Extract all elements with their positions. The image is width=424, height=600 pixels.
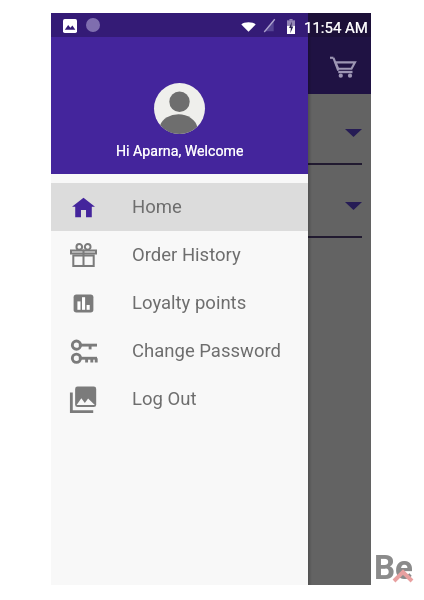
button[interactable]: Log Out	[51, 375, 308, 423]
staticText: Log Out	[132, 388, 197, 410]
staticText: Order History	[132, 244, 241, 266]
button[interactable]: Home	[51, 183, 308, 231]
staticText: Loyalty points	[132, 292, 247, 314]
button[interactable]: Loyalty points	[51, 279, 308, 327]
button[interactable]: Order History	[51, 231, 308, 279]
staticText: 11:54 AM	[304, 19, 368, 37]
staticText: Home	[132, 196, 182, 218]
button[interactable]: Cart	[325, 49, 359, 83]
staticText: Be	[374, 548, 413, 587]
button[interactable]: Change Password	[51, 327, 308, 375]
staticText: Hi Aparna, Welcome	[116, 143, 244, 160]
staticText: Change Password	[132, 340, 282, 362]
